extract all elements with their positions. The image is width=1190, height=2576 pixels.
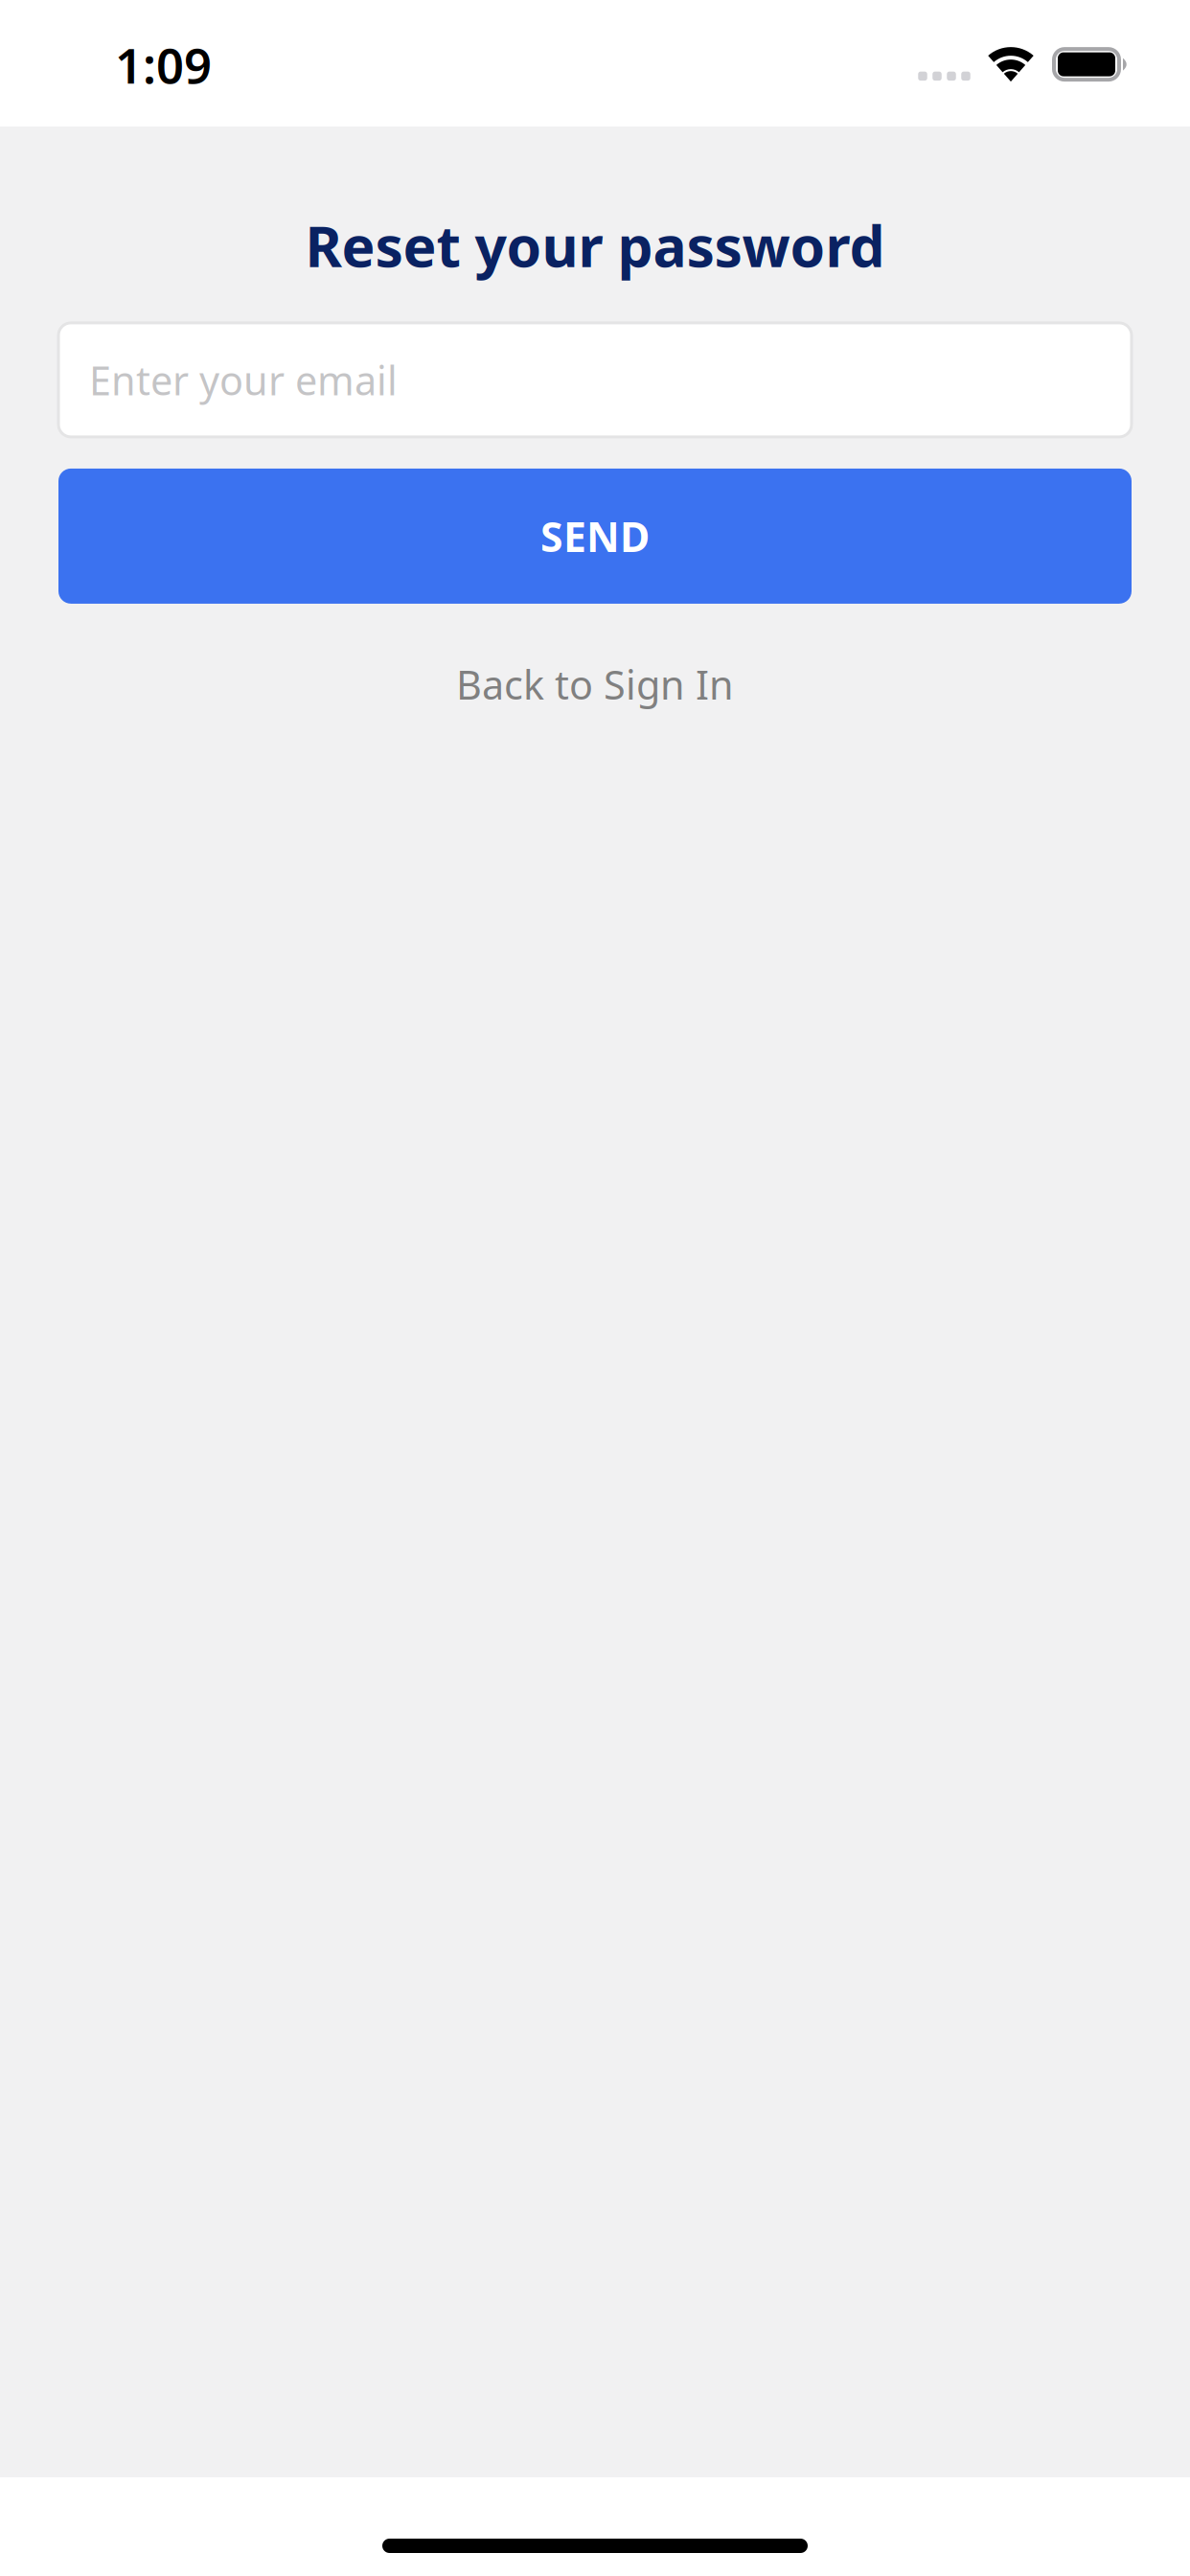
staticText: Enter your email: [89, 354, 398, 406]
button[interactable]: SEND: [58, 469, 1132, 604]
staticText: SEND: [540, 509, 650, 563]
button[interactable]: Back to Sign In: [58, 604, 1132, 737]
staticText: 1:09: [115, 33, 212, 97]
staticText: Back to Sign In: [456, 658, 734, 711]
button[interactable]: Enter your email: [58, 323, 1132, 437]
staticText: Reset your password: [305, 208, 885, 283]
